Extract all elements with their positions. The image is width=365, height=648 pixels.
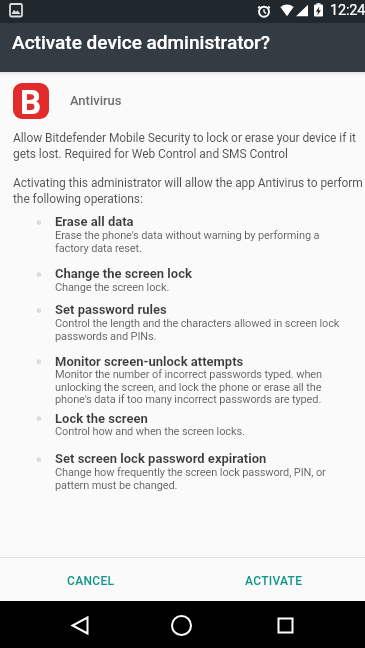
button[interactable]: [243, 601, 365, 648]
staticText: Set screen lock password expiration: [55, 451, 267, 466]
staticText: Activate device administrator?: [12, 31, 271, 53]
staticText: Control the length and the characters al…: [55, 317, 340, 342]
staticText: Erase the phone's data without warning b…: [55, 229, 320, 254]
staticText: Control how and when the screen locks.: [55, 425, 245, 438]
staticText: Change the screen lock.: [55, 281, 170, 294]
button[interactable]: ACTIVATE: [182, 560, 365, 602]
staticText: 12:24: [330, 2, 365, 19]
staticText: Change how frequently the screen lock pa…: [55, 466, 326, 491]
staticText: CANCEL: [67, 574, 115, 588]
staticText: B: [20, 83, 42, 119]
staticText: Monitor screen-unlock attempts: [55, 354, 244, 369]
staticText: Activating this administrator will allow…: [13, 176, 363, 206]
button[interactable]: CANCEL: [0, 560, 182, 602]
staticText: Monitor the number of incorrect password…: [55, 368, 323, 405]
staticText: Allow Bitdefender Mobile Security to loc…: [13, 131, 356, 161]
staticText: Change the screen lock: [55, 266, 192, 281]
staticText: ACTIVATE: [245, 574, 303, 588]
staticText: Antivirus: [70, 93, 122, 108]
staticText: Lock the screen: [55, 411, 148, 426]
staticText: Set password rules: [55, 302, 167, 317]
button[interactable]: [121, 601, 243, 648]
button[interactable]: [0, 601, 121, 648]
staticText: Erase all data: [55, 214, 134, 229]
